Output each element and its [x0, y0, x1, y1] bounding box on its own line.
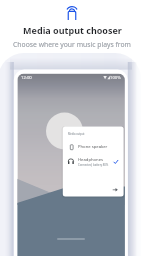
button[interactable]: Cast media [65, 6, 79, 20]
staticText: 100% [110, 75, 121, 81]
staticText: Choose where your music plays from [13, 40, 131, 49]
staticText: Connected, battery 80% [78, 163, 109, 167]
button[interactable]: Phone speaker [63, 141, 124, 153]
staticText: Media output [68, 132, 85, 136]
staticText: Media output chooser [23, 24, 122, 36]
staticText: Headphones [78, 157, 104, 163]
button[interactable]: Headphones [63, 155, 124, 169]
staticText: Phone speaker [78, 144, 108, 150]
staticText: 12:00 [21, 75, 32, 81]
